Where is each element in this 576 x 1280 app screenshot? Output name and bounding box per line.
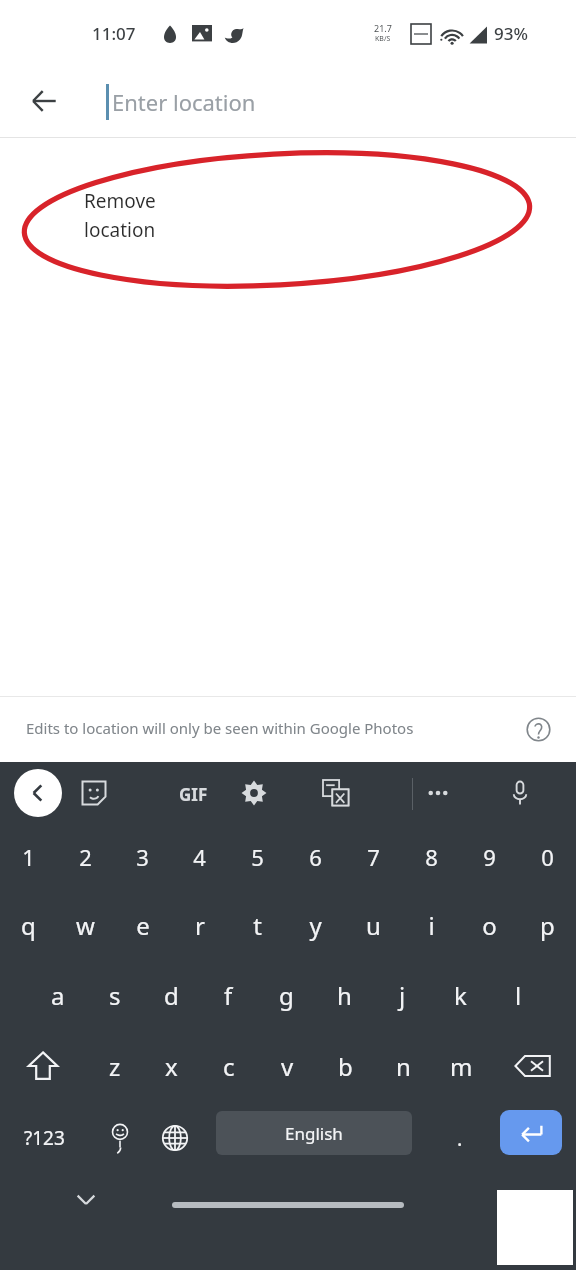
staticText: m: [450, 1050, 473, 1083]
button[interactable]: h: [315, 960, 373, 1030]
button[interactable]: f: [200, 960, 257, 1030]
staticText: t: [253, 909, 262, 942]
button[interactable]: 0: [518, 824, 576, 890]
button[interactable]: c: [200, 1030, 258, 1102]
button[interactable]: t: [228, 890, 286, 960]
staticText: f: [224, 979, 233, 1012]
button[interactable]: Keyboard tool: [413, 768, 463, 818]
staticText: Enter location: [112, 87, 256, 117]
button[interactable]: s: [86, 960, 143, 1030]
button[interactable]: Remove: [84, 188, 156, 240]
button[interactable]: 5: [228, 824, 286, 890]
staticText: 1: [22, 842, 35, 872]
button[interactable]: 7: [344, 824, 402, 890]
staticText: a: [51, 979, 65, 1012]
button[interactable]: Change language: [146, 1106, 204, 1170]
button[interactable]: Keyboard tool: [495, 768, 545, 818]
button[interactable]: x: [143, 1030, 200, 1102]
staticText: Remove: [84, 188, 156, 214]
staticText: i: [428, 909, 435, 942]
button[interactable]: 2: [57, 824, 114, 890]
staticText: l: [515, 979, 522, 1012]
staticText: 7: [367, 842, 380, 872]
button[interactable]: v: [258, 1030, 316, 1102]
button[interactable]: a: [29, 960, 86, 1030]
staticText: 0: [541, 842, 554, 872]
button[interactable]: m: [432, 1030, 490, 1102]
staticText: 6: [309, 842, 322, 872]
staticText: GIF: [179, 783, 208, 806]
button[interactable]: Enter: [500, 1110, 562, 1155]
staticText: .: [457, 1125, 463, 1152]
button[interactable]: Emoji: [90, 1106, 150, 1170]
staticText: Edits to location will only be seen with…: [26, 718, 414, 738]
button[interactable]: k: [431, 960, 489, 1030]
staticText: r: [195, 909, 205, 942]
button[interactable]: n: [374, 1030, 432, 1102]
button[interactable]: p: [518, 890, 576, 960]
staticText: y: [309, 909, 322, 942]
button[interactable]: q: [0, 890, 57, 960]
button[interactable]: 9: [460, 824, 518, 890]
button[interactable]: Keyboard tool: [229, 768, 279, 818]
staticText: d: [164, 979, 179, 1012]
button[interactable]: u: [344, 890, 402, 960]
staticText: 5: [251, 842, 264, 872]
button[interactable]: 6: [286, 824, 344, 890]
button[interactable]: .: [430, 1106, 490, 1170]
staticText: English: [285, 1122, 343, 1145]
button[interactable]: Backspace: [490, 1030, 576, 1102]
button[interactable]: Help: [514, 705, 562, 753]
staticText: j: [399, 979, 406, 1012]
button[interactable]: Enter location: [92, 66, 576, 137]
button[interactable]: Hide keyboard: [62, 1176, 110, 1224]
staticText: z: [109, 1050, 121, 1083]
button[interactable]: l: [489, 960, 547, 1030]
button[interactable]: 4: [171, 824, 228, 890]
staticText: q: [21, 909, 36, 942]
button[interactable]: Back: [18, 75, 70, 127]
staticText: o: [482, 909, 497, 942]
button[interactable]: d: [143, 960, 200, 1030]
button[interactable]: Shift: [0, 1030, 86, 1102]
button[interactable]: w: [57, 890, 114, 960]
staticText: w: [76, 909, 95, 942]
staticText: g: [279, 979, 294, 1012]
button[interactable]: English: [216, 1111, 412, 1155]
staticText: location: [84, 217, 156, 243]
staticText: 93%: [494, 22, 528, 45]
button[interactable]: ?123: [4, 1106, 84, 1170]
button[interactable]: 3: [114, 824, 171, 890]
button[interactable]: y: [286, 890, 344, 960]
button[interactable]: r: [171, 890, 228, 960]
staticText: h: [337, 979, 352, 1012]
button[interactable]: i: [402, 890, 460, 960]
button[interactable]: j: [373, 960, 431, 1030]
staticText: e: [136, 909, 150, 942]
button[interactable]: 8: [402, 824, 460, 890]
button[interactable]: Keyboard tool: [311, 768, 361, 818]
staticText: 8: [425, 842, 438, 872]
button[interactable]: b: [316, 1030, 374, 1102]
button[interactable]: g: [257, 960, 315, 1030]
staticText: b: [338, 1050, 353, 1083]
button[interactable]: GIF: [168, 769, 218, 819]
button[interactable]: 1: [0, 824, 57, 890]
button[interactable]: e: [114, 890, 171, 960]
button[interactable]: z: [86, 1030, 143, 1102]
staticText: 11:07: [92, 22, 136, 45]
button[interactable]: Back: [14, 769, 62, 817]
staticText: 21.7: [374, 22, 392, 34]
button[interactable]: Keyboard tool: [69, 768, 119, 818]
staticText: n: [396, 1050, 411, 1083]
staticText: x: [165, 1050, 178, 1083]
button[interactable]: o: [460, 890, 518, 960]
staticText: 9: [483, 842, 496, 872]
staticText: s: [109, 979, 121, 1012]
staticText: c: [223, 1050, 235, 1083]
staticText: p: [540, 909, 555, 942]
staticText: u: [366, 909, 381, 942]
staticText: ?123: [24, 1125, 65, 1151]
staticText: v: [281, 1050, 294, 1083]
staticText: k: [454, 979, 467, 1012]
